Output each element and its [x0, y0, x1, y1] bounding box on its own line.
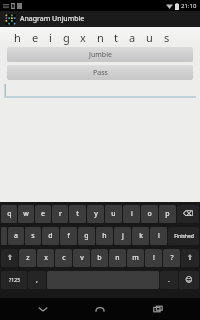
staticText: ⇧ [7, 254, 13, 262]
staticText: ! [153, 253, 155, 263]
staticText: a [129, 30, 136, 45]
button[interactable]: r [52, 205, 68, 223]
button[interactable]: Backspace [177, 205, 199, 223]
staticText: Jumble [89, 50, 112, 60]
button[interactable]: Shift [1, 249, 18, 267]
staticText: ☺ [185, 276, 193, 284]
staticText: x [44, 253, 48, 263]
staticText: a [14, 231, 18, 241]
staticText: h [102, 231, 107, 241]
button[interactable]: z [19, 249, 36, 267]
button[interactable]: d [42, 227, 59, 245]
staticText: n [115, 253, 120, 263]
staticText: i [131, 209, 133, 219]
staticText: z [26, 253, 30, 263]
staticText: h [14, 30, 21, 45]
staticText: e [41, 209, 45, 219]
staticText: ? [170, 253, 174, 263]
staticText: p [165, 209, 170, 219]
button[interactable]: o [141, 205, 158, 223]
staticText: n [97, 30, 104, 45]
button[interactable]: t [69, 205, 86, 223]
staticText: u [111, 209, 116, 219]
staticText: k [139, 231, 143, 241]
button[interactable]: v [73, 249, 90, 267]
button[interactable]: p [159, 205, 176, 223]
button[interactable] [1, 227, 7, 245]
button[interactable]: Period [160, 271, 178, 289]
button[interactable]: c [55, 249, 72, 267]
staticText: j [122, 231, 124, 241]
button[interactable]: l [150, 227, 167, 245]
button[interactable]: Pass [7, 65, 193, 80]
button[interactable]: g [78, 227, 95, 245]
button[interactable]: y [87, 205, 104, 223]
staticText: ?123 [9, 277, 20, 284]
button[interactable]: w [18, 205, 34, 223]
staticText: g [63, 30, 70, 45]
staticText: . [168, 275, 170, 285]
staticText: u [146, 30, 153, 45]
staticText: ⌫ [183, 210, 193, 218]
staticText: Finished [174, 233, 194, 240]
button[interactable]: b [91, 249, 108, 267]
button[interactable]: k [132, 227, 149, 245]
staticText: m [132, 253, 139, 263]
button[interactable]: Home [85, 298, 115, 320]
staticText: ⇧ [187, 254, 193, 262]
staticText: o [147, 209, 152, 219]
staticText: e [32, 30, 39, 45]
staticText: Pass [93, 68, 108, 78]
button[interactable]: u [105, 205, 122, 223]
staticText: x [80, 30, 86, 45]
staticText: b [97, 253, 102, 263]
button[interactable]: ! [145, 249, 162, 267]
staticText: t [114, 30, 118, 45]
button[interactable]: Recent apps [143, 298, 173, 320]
button[interactable]: h [96, 227, 113, 245]
staticText: t [76, 209, 79, 219]
button[interactable]: a [8, 227, 24, 245]
button[interactable] [4, 83, 196, 98]
staticText: d [48, 231, 53, 241]
button[interactable]: q [1, 205, 17, 223]
button[interactable]: j [114, 227, 131, 245]
button[interactable]: s [25, 227, 41, 245]
staticText: q [7, 209, 12, 219]
button[interactable]: i [123, 205, 140, 223]
button[interactable]: Jumble [7, 47, 193, 62]
staticText: v [80, 253, 84, 263]
staticText: Anagram Unjumble [20, 14, 85, 24]
button[interactable]: e [35, 205, 51, 223]
staticText: s [164, 30, 170, 45]
button[interactable]: Finished [168, 227, 199, 245]
staticText: i [49, 30, 52, 45]
button[interactable]: Back [28, 298, 58, 320]
button[interactable]: Emoji [179, 271, 199, 289]
staticText: f [67, 231, 70, 241]
staticText: g [84, 231, 89, 241]
staticText: r [59, 209, 62, 219]
button[interactable]: ? [163, 249, 180, 267]
button[interactable]: Symbols [1, 271, 27, 289]
button[interactable]: x [37, 249, 54, 267]
button[interactable]: Shift [181, 249, 199, 267]
button[interactable]: n [109, 249, 126, 267]
staticText: 21:10 [181, 2, 197, 10]
staticText: l [158, 231, 160, 241]
button[interactable]: f [60, 227, 77, 245]
button[interactable]: m [127, 249, 144, 267]
staticText: y [94, 209, 98, 219]
staticText: w [23, 209, 29, 219]
staticText: , [36, 275, 38, 285]
staticText: s [31, 231, 35, 241]
button[interactable]: Comma [28, 271, 46, 289]
staticText: c [62, 253, 66, 263]
